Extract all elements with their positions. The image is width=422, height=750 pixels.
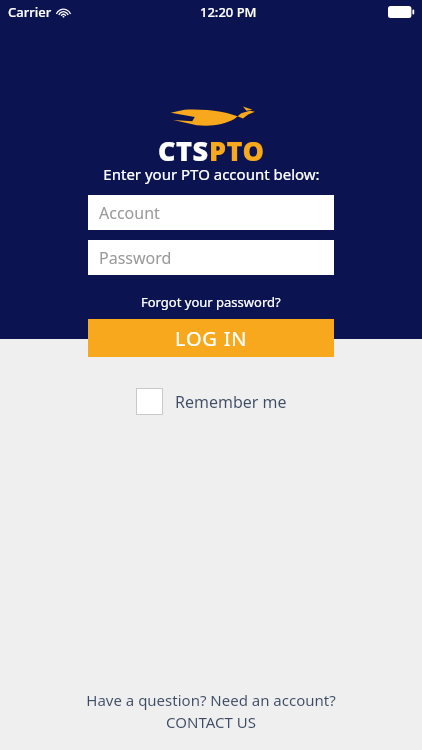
button[interactable]: Forgot your password? — [88, 293, 334, 311]
button[interactable]: Have a question? Need an account? — [0, 690, 422, 732]
staticText: Password — [99, 247, 172, 269]
staticText: Remember me — [175, 391, 287, 413]
staticText: CONTACT US — [166, 712, 256, 732]
button[interactable]: Remember me — [136, 388, 287, 415]
button[interactable]: Password — [88, 240, 334, 275]
staticText: Carrier — [8, 3, 52, 21]
staticText: PTO — [209, 132, 265, 169]
button[interactable]: Account — [88, 195, 334, 230]
staticText: Enter your PTO account below: — [103, 164, 320, 184]
staticText: LOG IN — [175, 325, 248, 352]
staticText: 12:20 PM — [200, 3, 257, 21]
staticText: Have a question? Need an account? — [86, 690, 336, 710]
staticText: Forgot your password? — [141, 293, 281, 311]
staticText: CTS — [158, 132, 209, 169]
staticText: Account — [99, 202, 160, 224]
button[interactable]: LOG IN — [88, 319, 334, 357]
